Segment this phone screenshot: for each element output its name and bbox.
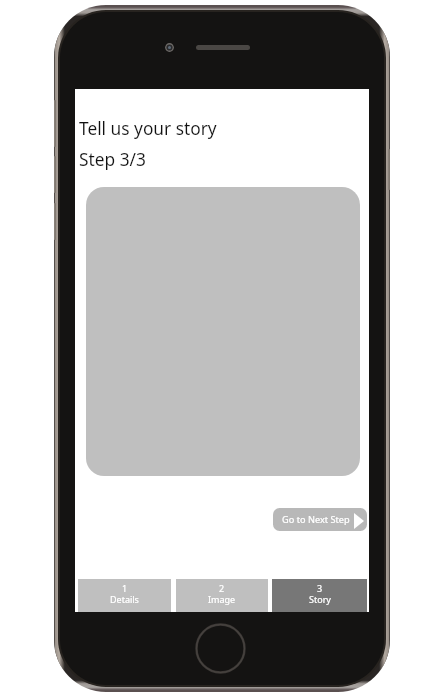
staticText: Go to Next Step: [282, 513, 350, 526]
staticText: 3: [317, 582, 323, 594]
staticText: 2: [219, 582, 225, 594]
staticText: Image: [208, 593, 236, 605]
button[interactable]: 3: [272, 579, 367, 612]
button[interactable]: Go to Next Step: [273, 508, 367, 531]
other: Go to next step: [354, 513, 364, 529]
staticText: Step 3/3: [79, 148, 146, 172]
staticText: Tell us your story: [79, 117, 217, 141]
staticText: 1: [122, 582, 128, 594]
staticText: Details: [110, 593, 139, 605]
staticText: Story: [309, 593, 331, 605]
button[interactable]: 1: [78, 579, 171, 612]
button[interactable]: 2: [176, 579, 268, 612]
button[interactable]: [86, 187, 360, 476]
button[interactable]: Home: [195, 623, 246, 674]
